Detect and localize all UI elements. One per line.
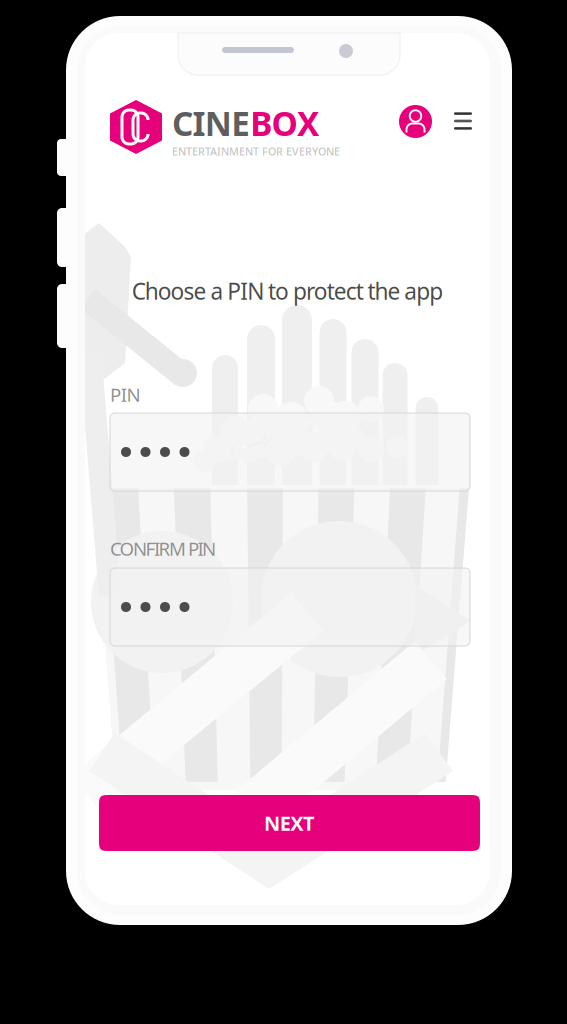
button[interactable]: Menu [454, 112, 472, 130]
staticText: BOX [250, 101, 319, 145]
staticText: Choose a PIN to protect the app [132, 276, 443, 306]
staticText: ENTERTAINMENT FOR EVERYONE [172, 144, 340, 158]
staticText: CINE [172, 101, 250, 145]
button[interactable] [110, 568, 470, 646]
staticText: PIN [110, 382, 141, 407]
staticText: NEXT [264, 810, 315, 836]
button[interactable] [110, 413, 470, 491]
button[interactable]: NEXT [99, 795, 480, 851]
staticText: CONFIRM PIN [110, 536, 216, 561]
button[interactable]: Account [399, 105, 432, 138]
